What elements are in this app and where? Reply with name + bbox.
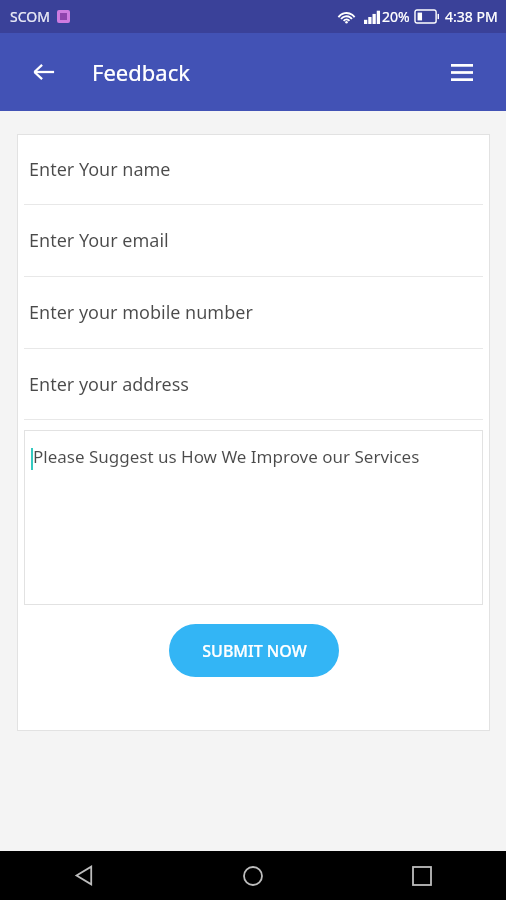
button[interactable]: Menu — [438, 48, 486, 96]
staticText: Feedback — [92, 57, 190, 87]
button[interactable]: Back — [0, 851, 168, 900]
button[interactable]: Enter Your name — [17, 134, 490, 204]
staticText: 4:38 PM — [445, 7, 498, 26]
button[interactable]: Enter your address — [17, 349, 490, 419]
button[interactable]: Enter your mobile number — [17, 277, 490, 348]
button[interactable]: SUBMIT NOW — [169, 624, 339, 677]
staticText: Enter Your email — [29, 228, 169, 253]
button[interactable]: Enter Your email — [17, 205, 490, 276]
staticText: SUBMIT NOW — [202, 640, 307, 662]
staticText: SCOM — [10, 7, 50, 26]
button[interactable]: Recent apps — [337, 851, 506, 900]
button[interactable]: Home — [168, 851, 337, 900]
staticText: Enter Your name — [29, 157, 171, 182]
staticText: Please Suggest us How We Improve our Ser… — [33, 445, 420, 468]
staticText: 20% — [382, 7, 410, 26]
button[interactable]: Please Suggest us How We Improve our Ser… — [24, 430, 483, 605]
staticText: Enter your mobile number — [29, 300, 253, 325]
button[interactable]: Back — [20, 48, 68, 96]
staticText: Enter your address — [29, 372, 189, 397]
